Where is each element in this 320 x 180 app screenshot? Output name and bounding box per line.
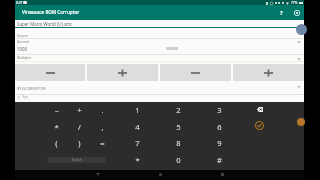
staticText: ? [280,9,283,17]
button[interactable]: + [68,101,91,118]
staticText: 77% [291,1,298,5]
button[interactable]: * [45,118,68,135]
staticText: Source [17,33,28,38]
staticText: = [100,138,105,148]
button[interactable]: Increase [233,64,304,81]
staticText: * [54,122,59,132]
button[interactable]: # [199,151,240,168]
button[interactable]: 7 [117,134,158,151]
button[interactable]: 1 [117,101,158,118]
staticText: 2 [176,105,181,115]
staticText: Vinesauce ROM Corruptor [22,9,80,15]
button[interactable]: = [91,134,114,151]
staticText: English [72,158,82,162]
staticText: / [78,122,81,132]
staticText: 7 [135,138,140,148]
staticText: # [217,155,222,165]
button[interactable]: . [91,101,114,118]
staticText: Multiplier [17,56,32,60]
staticText: 1000 [17,46,28,52]
button[interactable]: Decrease [160,64,231,81]
button[interactable]: 6 [199,118,240,135]
button[interactable]: ) [68,134,91,151]
button[interactable]: , [91,118,114,135]
staticText: 8:37 [16,1,23,5]
button[interactable]: Decrease [15,64,85,81]
staticText: 9 [217,138,222,148]
staticText: 0 [176,155,181,165]
button[interactable]: More options [291,7,302,18]
staticText: Super Mario World (U).smc [17,21,73,27]
staticText: Amount [17,40,30,44]
staticText: – [55,105,59,115]
button[interactable]: 9 [199,134,240,151]
button[interactable]: 8 [158,134,199,151]
staticText: , [101,122,104,132]
staticText: 6 [217,122,222,132]
button[interactable]: 0 [158,151,199,168]
button[interactable]: Help [276,7,287,18]
staticText: 8 [176,138,181,148]
button[interactable]: 3 [199,101,240,118]
button[interactable]: ( [45,134,68,151]
staticText: ) [78,138,81,148]
staticText: + [77,105,82,115]
button[interactable]: Enter [255,121,264,130]
button[interactable]: Home [149,169,171,180]
staticText: * [135,155,140,165]
button[interactable]: Account [296,24,307,35]
staticText: . [101,105,104,115]
button[interactable]: Back [87,169,109,180]
staticText: 300000 [166,46,179,51]
staticText: 5 [176,122,181,132]
button[interactable]: Increase [87,64,158,81]
staticText: ( [55,138,58,148]
button[interactable]: 2 [158,101,199,118]
staticText: 4 [135,122,140,132]
button[interactable]: – [45,101,68,118]
staticText: BY ELCORRUPTOR [17,86,46,91]
button[interactable]: Backspace [256,106,263,112]
button[interactable]: 5 [158,118,199,135]
staticText: 1 [135,105,140,115]
staticText: 3 [217,105,222,115]
button[interactable]: 4 [117,118,158,135]
button[interactable]: * [117,151,158,168]
button[interactable]: / [68,118,91,135]
button[interactable]: Recent apps [211,169,233,180]
button[interactable]: Space [47,157,106,163]
staticText: Byte [22,95,29,99]
